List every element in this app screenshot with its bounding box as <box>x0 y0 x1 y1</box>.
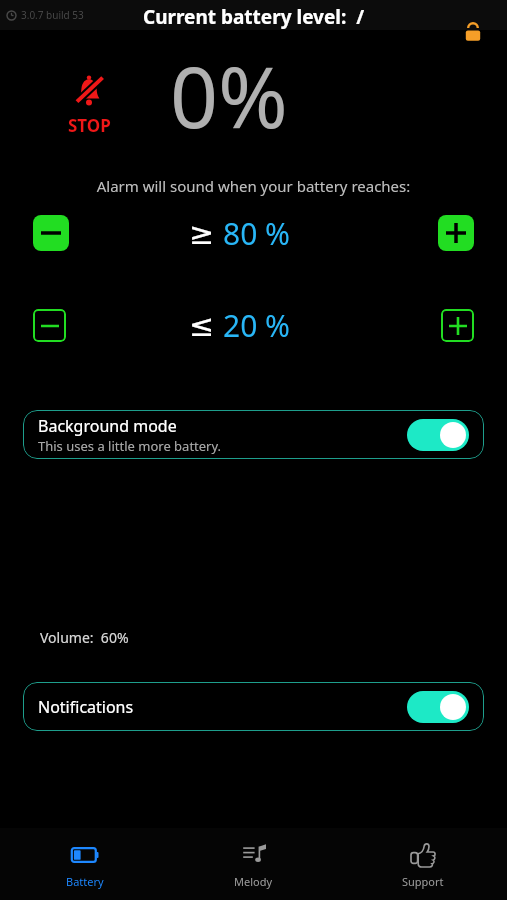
button[interactable]: Battery <box>0 828 169 900</box>
staticText: 20 % <box>223 305 291 346</box>
button[interactable]: Lock <box>456 15 490 49</box>
button[interactable]: Toggle <box>407 419 469 451</box>
button[interactable]: Increase lower threshold <box>441 309 474 342</box>
staticText: Support <box>402 874 444 889</box>
button[interactable]: Toggle <box>407 691 469 723</box>
staticText: Alarm will sound when your battery reach… <box>0 176 507 196</box>
staticText: 3.0.7 build 53 <box>21 8 84 22</box>
staticText: Volume: 60% <box>40 628 129 647</box>
staticText: ≥ <box>189 216 215 251</box>
staticText: Background mode <box>38 415 177 437</box>
staticText: Notifications <box>38 696 407 718</box>
staticText: 80 % <box>223 213 291 254</box>
staticText: STOP <box>68 114 111 137</box>
button[interactable]: Decrease lower threshold <box>33 309 66 342</box>
staticText: Melody <box>234 874 273 889</box>
button[interactable]: Background mode <box>23 410 484 459</box>
staticText: ≤ <box>189 308 215 343</box>
button[interactable]: Increase upper threshold <box>438 215 474 251</box>
button[interactable]: STOP <box>52 72 126 137</box>
staticText: This uses a little more battery. <box>38 437 222 455</box>
staticText: Battery <box>66 874 104 889</box>
button[interactable]: Notifications <box>23 682 484 731</box>
staticText: Current battery level: / <box>0 4 507 30</box>
button[interactable]: Decrease upper threshold <box>33 215 69 251</box>
button[interactable]: Melody <box>169 828 338 900</box>
staticText: 0% <box>170 38 288 152</box>
button[interactable]: Support <box>338 828 507 900</box>
